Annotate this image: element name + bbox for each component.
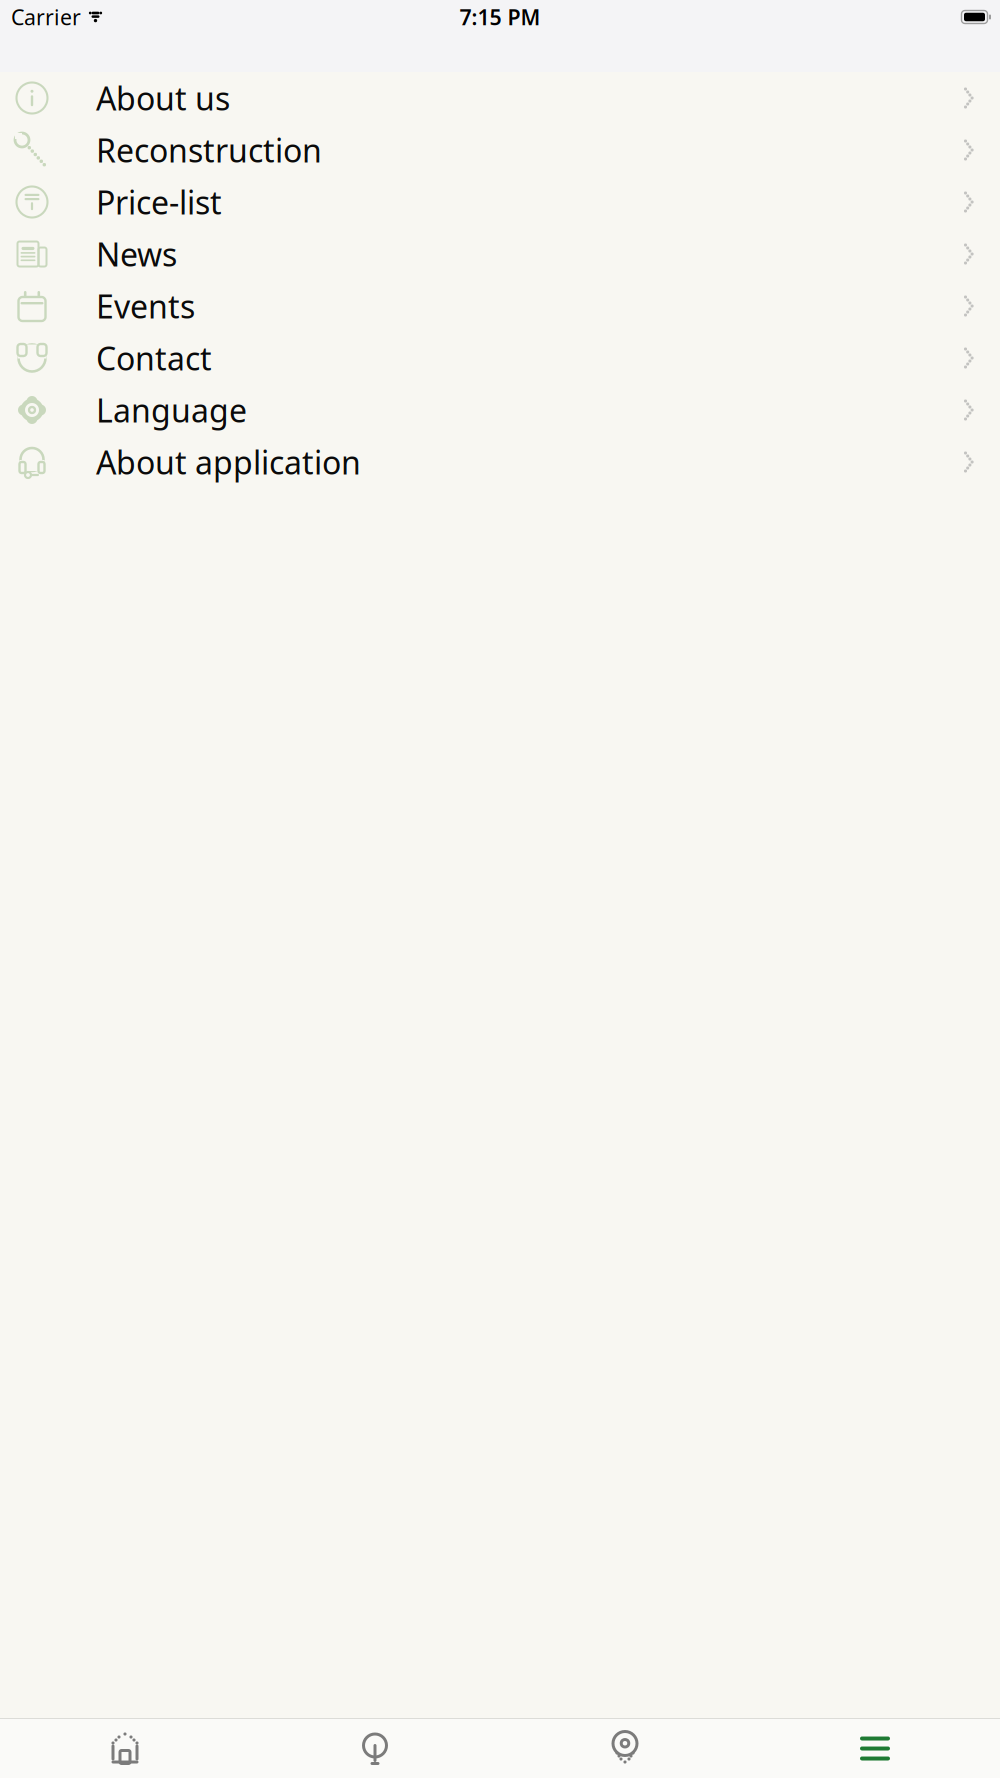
button[interactable]: Map <box>500 1719 750 1778</box>
button[interactable]: Reconstruction <box>0 124 1000 176</box>
staticText: News <box>96 233 177 275</box>
staticText: Carrier <box>11 3 81 31</box>
button[interactable]: About us <box>0 72 1000 124</box>
staticText: Events <box>96 285 195 327</box>
staticText: Contact <box>96 337 212 379</box>
button[interactable]: Events <box>0 280 1000 332</box>
button[interactable]: Menu <box>750 1719 1000 1778</box>
button[interactable]: Language <box>0 384 1000 436</box>
staticText: Language <box>96 389 247 431</box>
button[interactable]: Contact <box>0 332 1000 384</box>
staticText: 7:15 PM <box>459 3 540 31</box>
staticText: Reconstruction <box>96 129 322 171</box>
button[interactable]: Price-list <box>0 176 1000 228</box>
staticText: About us <box>96 77 230 119</box>
staticText: About application <box>96 441 361 483</box>
button[interactable]: Home <box>0 1719 250 1778</box>
staticText: Price-list <box>96 181 222 223</box>
button[interactable]: News <box>0 228 1000 280</box>
button[interactable]: About application <box>0 436 1000 488</box>
button[interactable]: Park <box>250 1719 500 1778</box>
